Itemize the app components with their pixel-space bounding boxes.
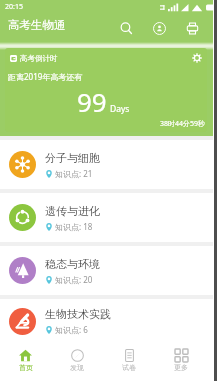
staticText: 知识点: 20 [55, 274, 93, 285]
button[interactable]: 更多 [155, 343, 207, 377]
staticText: 试卷 [122, 363, 136, 372]
staticText: 20:15 [5, 2, 23, 12]
staticText: 稳态与环境 [45, 257, 100, 271]
button[interactable]: 首页 [0, 343, 51, 377]
staticText: 生物技术实践 [45, 307, 111, 321]
staticText: 高考倒计时 [20, 54, 58, 63]
staticText: 更多 [174, 363, 188, 372]
button[interactable]: Print [181, 17, 204, 40]
button[interactable]: Account [148, 17, 171, 40]
staticText: 知识点: 21 [55, 168, 93, 179]
staticText: 知识点: 18 [55, 221, 93, 232]
staticText: 知识点: 6 [55, 324, 88, 335]
staticText: 38时44分59秒 [160, 119, 206, 129]
button[interactable]: Search [115, 17, 138, 40]
button[interactable]: 遗传与进化 [0, 193, 213, 242]
staticText: 发现 [70, 363, 84, 372]
staticText: 高考生物通 [8, 18, 66, 32]
staticText: 分子与细胞 [45, 151, 100, 165]
button[interactable]: 发现 [51, 343, 103, 377]
staticText: 遗传与进化 [45, 204, 100, 218]
button[interactable]: 分子与细胞 [0, 140, 213, 189]
staticText: 99 [77, 84, 107, 119]
button[interactable]: Settings [190, 51, 204, 65]
button[interactable]: 高考倒计时 [5, 48, 207, 132]
staticText: 首页 [19, 363, 33, 372]
staticText: 距离2019年高考还有 [8, 71, 83, 82]
staticText: Days [110, 103, 130, 115]
button[interactable]: 生物技术实践 [0, 299, 213, 343]
button[interactable]: 稳态与环境 [0, 246, 213, 295]
button[interactable]: 试卷 [103, 343, 155, 377]
